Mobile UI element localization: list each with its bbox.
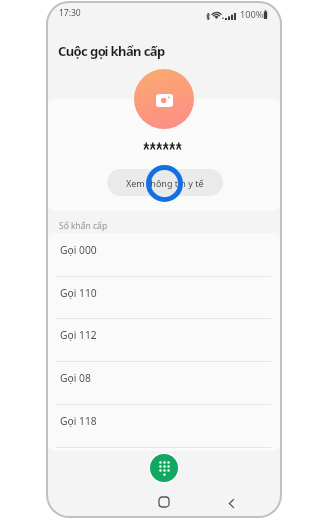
staticText: Gọi 000: [60, 243, 97, 257]
button[interactable]: Xem thông tin y tế: [107, 169, 223, 196]
button[interactable]: Gọi 000: [48, 233, 280, 276]
button[interactable]: Gọi 112: [48, 318, 280, 361]
button[interactable]: Gọi 118: [48, 404, 280, 447]
staticText: Gọi 110: [60, 286, 97, 300]
button[interactable]: Gọi 110: [48, 276, 280, 319]
button[interactable]: Back: [221, 493, 241, 513]
button[interactable]: Gọi 08: [48, 361, 280, 404]
staticText: 17:30: [59, 7, 81, 19]
staticText: Gọi 08: [60, 371, 91, 385]
button[interactable]: Dial pad: [148, 452, 180, 484]
staticText: Cuộc gọi khẩn cấp: [58, 42, 165, 60]
staticText: Số khẩn cấp: [59, 220, 108, 232]
staticText: 100%: [240, 8, 264, 21]
staticText: Gọi 118: [60, 414, 97, 428]
staticText: Xem thông tin y tế: [126, 177, 204, 189]
button[interactable]: Home: [154, 492, 174, 512]
staticText: Gọi 112: [60, 328, 97, 342]
